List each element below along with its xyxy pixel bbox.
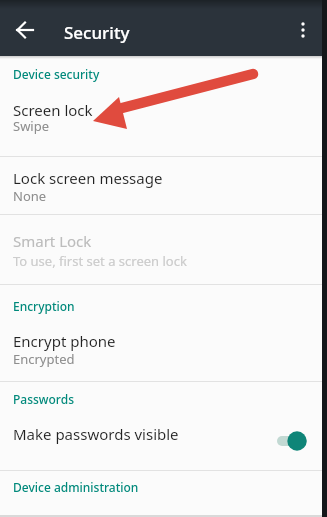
button[interactable] — [283, 8, 323, 56]
staticText: Swipe — [13, 117, 50, 135]
staticText: Security — [64, 21, 130, 44]
staticText: Screen lock — [13, 100, 93, 120]
staticText: To use, first set a screen lock — [13, 252, 187, 270]
staticText: Lock screen message — [13, 168, 163, 188]
staticText: Encryption — [13, 298, 75, 314]
staticText: Device administration — [13, 479, 139, 495]
button[interactable]: Encrypt phone — [0, 318, 322, 381]
staticText: None — [13, 187, 47, 205]
staticText: Passwords — [13, 391, 74, 407]
staticText: Smart Lock — [13, 231, 92, 251]
button[interactable]: Screen lock — [0, 88, 322, 156]
button[interactable] — [0, 8, 48, 56]
staticText: Device security — [13, 66, 100, 82]
staticText: Encrypt phone — [13, 331, 116, 351]
button[interactable]: Lock screen message — [0, 157, 322, 214]
staticText: Encrypted — [13, 350, 75, 368]
button[interactable]: Make passwords visible — [0, 405, 322, 470]
staticText: Make passwords visible — [13, 424, 179, 444]
